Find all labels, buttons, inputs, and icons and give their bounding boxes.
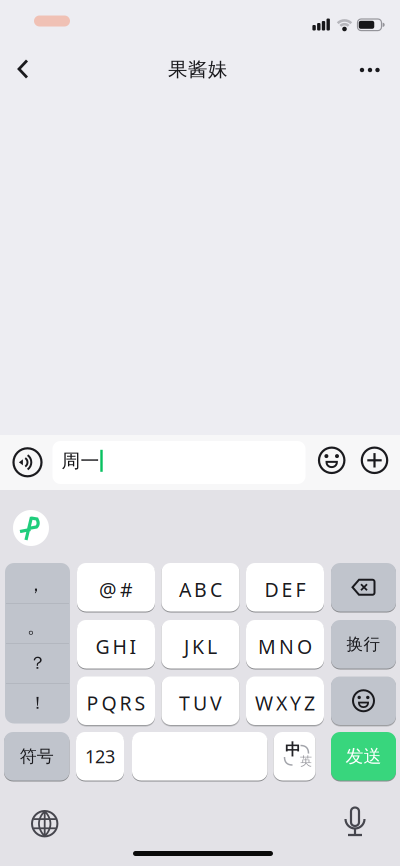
staticText: 中	[285, 740, 301, 759]
button[interactable]: Next keyboard	[28, 807, 62, 841]
button[interactable]: PQRS	[77, 676, 155, 725]
button[interactable]: More	[348, 55, 392, 85]
button[interactable]: GHI	[77, 620, 155, 668]
button[interactable]: MNO	[246, 620, 324, 668]
button[interactable]: Delete	[331, 563, 396, 611]
button[interactable]: ABC	[161, 563, 239, 611]
button[interactable]: 发送	[331, 732, 396, 780]
button[interactable]: 换行	[331, 620, 396, 668]
staticText: ？	[29, 652, 46, 674]
staticText: ABC	[179, 576, 222, 603]
button[interactable]: Voice message	[9, 444, 45, 480]
staticText: 。	[27, 615, 46, 638]
button[interactable]: Dictation	[338, 799, 372, 839]
staticText: PQRS	[86, 690, 145, 716]
button[interactable]: Sogou keyboard	[11, 508, 51, 548]
button[interactable]: 123	[76, 732, 124, 780]
staticText: 周一	[61, 449, 99, 473]
staticText: 发送	[345, 745, 381, 768]
button[interactable]: Stickers	[331, 676, 396, 725]
staticText: 英	[300, 754, 312, 769]
staticText: JKL	[184, 633, 217, 660]
button[interactable]: ，	[5, 563, 70, 603]
button[interactable]: @#	[77, 563, 155, 611]
button[interactable]: 。	[5, 603, 70, 643]
staticText: 符号	[20, 745, 54, 767]
button[interactable]: More functions	[356, 442, 392, 478]
button[interactable]: 符号	[4, 732, 69, 780]
staticText: 123	[85, 744, 115, 768]
staticText: GHI	[95, 633, 136, 660]
button[interactable]: Emoji	[314, 442, 350, 478]
button[interactable]: 中/英	[273, 732, 315, 780]
staticText: DEF	[264, 576, 305, 603]
staticText: ！	[29, 692, 46, 714]
staticText: ，	[26, 573, 45, 596]
staticText: @#	[99, 576, 133, 603]
button[interactable]: ？	[5, 643, 70, 683]
staticText: TUV	[179, 690, 222, 716]
staticText: 换行	[346, 634, 380, 655]
button[interactable]: ！	[5, 683, 70, 723]
button[interactable]: Back	[1, 47, 45, 91]
button[interactable]: JKL	[161, 620, 239, 668]
staticText: MNO	[258, 633, 312, 660]
staticText: 果酱妹	[168, 57, 228, 82]
staticText: WXYZ	[255, 690, 315, 716]
button[interactable]: 空格	[132, 732, 267, 780]
button[interactable]: WXYZ	[246, 676, 324, 725]
button[interactable]: DEF	[246, 563, 324, 611]
button[interactable]: TUV	[161, 676, 239, 725]
